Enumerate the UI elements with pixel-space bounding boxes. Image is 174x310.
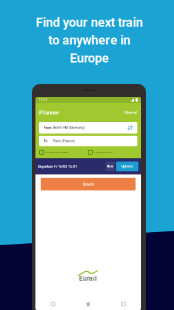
staticText: Pass network only [94, 151, 113, 154]
staticText: New [107, 164, 114, 168]
button[interactable]: Search [41, 178, 136, 190]
button[interactable]: No reservation needed [39, 150, 88, 154]
staticText: Departure Fr 15/03 15:01 [38, 164, 77, 169]
button[interactable]: Back [35, 298, 71, 310]
button[interactable]: Options [116, 162, 138, 171]
staticText: Eurail [79, 275, 97, 282]
staticText: To [44, 139, 48, 143]
button[interactable]: Clear all [124, 110, 137, 115]
staticText: Planner [39, 109, 59, 116]
staticText: Find your next train to anywhere in Euro… [35, 15, 142, 65]
staticText: Clear all [124, 110, 137, 115]
staticText: No reservation needed [45, 151, 67, 154]
button[interactable]: New [105, 162, 115, 171]
staticText: Berlin Hbf (Germany) [53, 126, 85, 130]
staticText: Search [83, 182, 94, 186]
staticText: Options [121, 164, 133, 168]
button[interactable]: Pass network only [88, 150, 137, 154]
button[interactable]: Recent apps [106, 298, 141, 310]
staticText: Paris (France) [53, 139, 75, 143]
staticText: From [44, 126, 52, 130]
button[interactable]: Home [71, 298, 106, 310]
staticText: 15:01 [39, 98, 48, 102]
